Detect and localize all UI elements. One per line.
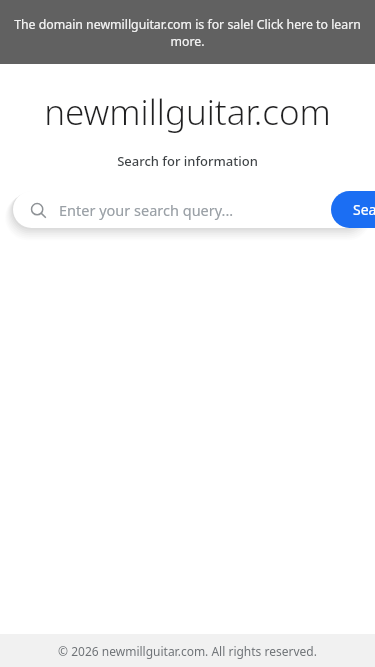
staticText: Search: [353, 200, 375, 219]
button[interactable]: The domain newmillguitar.com is for sale…: [0, 0, 375, 64]
staticText: Enter your search query...: [59, 200, 363, 220]
other: Search: [25, 197, 51, 223]
staticText: Search for information: [0, 152, 375, 170]
button[interactable]: Search: [13, 191, 363, 228]
staticText: © 2026 newmillguitar.com. All rights res…: [58, 643, 317, 659]
staticText: newmillguitar.com: [0, 88, 375, 136]
button[interactable]: Search: [331, 191, 375, 228]
staticText: The domain newmillguitar.com is for sale…: [14, 16, 361, 49]
